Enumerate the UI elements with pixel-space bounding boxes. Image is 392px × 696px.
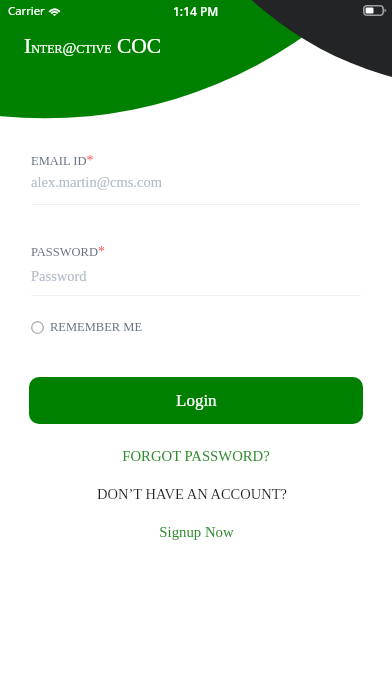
staticText: FORGOT PASSWORD?: [122, 448, 270, 464]
staticText: Login: [176, 391, 217, 410]
other: Wifi signal: [47, 5, 62, 16]
staticText: alex.martin@cms.com: [31, 174, 162, 190]
button[interactable]: Login: [29, 377, 363, 424]
button[interactable]: REMEMBER ME: [31, 320, 143, 334]
staticText: INTER@CTIVE COC: [24, 34, 162, 58]
staticText: DON’T HAVE AN ACCOUNT?: [97, 486, 287, 502]
staticText: Carrier: [8, 3, 45, 18]
button[interactable]: Signup Now: [0, 524, 392, 540]
other: Battery: [363, 5, 387, 16]
staticText: REMEMBER ME: [50, 320, 143, 334]
staticText: 1:14 PM: [173, 3, 219, 19]
button[interactable]: DON’T HAVE AN ACCOUNT?: [0, 486, 388, 502]
staticText: Signup Now: [159, 524, 234, 540]
button[interactable]: FORGOT PASSWORD?: [0, 448, 392, 464]
staticText: EMAIL ID*: [31, 153, 94, 169]
staticText: PASSWORD*: [31, 244, 105, 260]
staticText: Password: [31, 268, 87, 284]
